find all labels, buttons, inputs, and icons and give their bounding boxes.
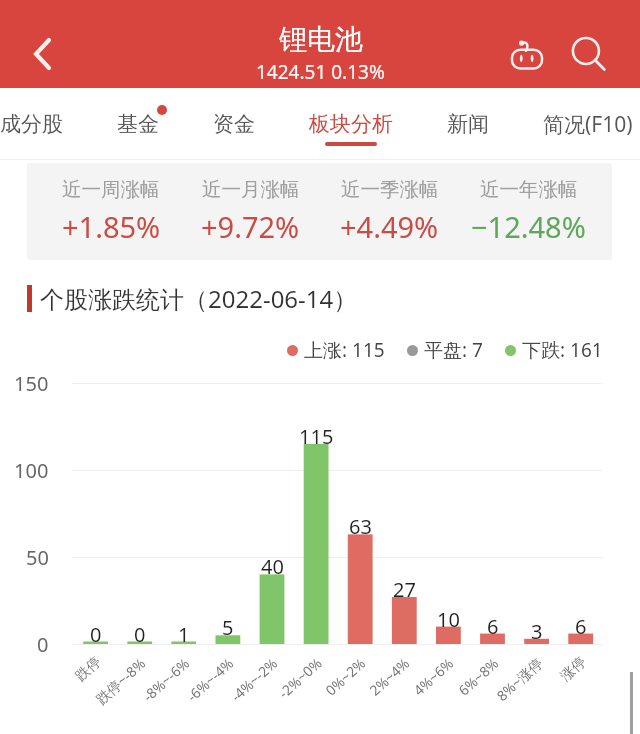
staticText: 板块分析 [309, 111, 393, 137]
button[interactable]: 上涨: 115 [287, 337, 385, 363]
staticText: 0 [134, 621, 146, 643]
staticText: 新闻 [447, 111, 489, 137]
staticText: 1 [178, 621, 190, 643]
button[interactable]: Back [14, 26, 70, 82]
staticText: -6%~-4% [183, 653, 238, 706]
staticText: 4%~6% [409, 653, 458, 699]
staticText: 涨停 [557, 653, 590, 685]
staticText: 跌停~-8% [92, 653, 150, 708]
staticText: -2%~0% [274, 653, 326, 702]
staticText: 63 [349, 513, 372, 535]
staticText: 3 [531, 618, 543, 640]
staticText: 5 [222, 614, 234, 636]
staticText: +9.72% [201, 207, 300, 246]
staticText: 115 [299, 423, 334, 445]
staticText: 100 [14, 457, 49, 483]
staticText: 简况(F10) [543, 110, 633, 139]
button[interactable]: 板块分析 [282, 88, 420, 160]
button[interactable]: 近一周涨幅 [27, 163, 612, 260]
staticText: 40 [261, 553, 284, 575]
button[interactable]: AI assistant [499, 26, 555, 82]
staticText: 平盘: 7 [424, 337, 483, 363]
button[interactable]: 新闻 [420, 88, 516, 160]
staticText: +4.49% [340, 207, 439, 246]
staticText: 6%~8% [454, 653, 503, 699]
staticText: 锂电池 [279, 22, 363, 57]
staticText: 资金 [213, 111, 255, 137]
button[interactable]: Search [562, 26, 618, 82]
staticText: 基金 [117, 111, 159, 137]
staticText: 6 [575, 613, 587, 635]
staticText: −12.48% [471, 207, 586, 246]
staticText: 1424.51 0.13% [256, 59, 385, 85]
button[interactable]: 简况(F10) [516, 88, 640, 160]
staticText: 成分股 [0, 111, 63, 137]
staticText: 0 [37, 631, 49, 657]
staticText: 10 [437, 606, 460, 628]
button[interactable]: 平盘: 7 [407, 337, 483, 363]
staticText: 跌停 [72, 653, 105, 685]
staticText: 上涨: 115 [304, 337, 385, 363]
staticText: 50 [26, 544, 49, 570]
staticText: +1.85% [62, 207, 161, 246]
staticText: 0 [90, 621, 102, 643]
staticText: 8%~涨停 [492, 653, 547, 705]
staticText: -4%~-2% [227, 653, 282, 706]
button[interactable]: 下跌: 161 [505, 337, 603, 363]
staticText: 27 [393, 576, 416, 598]
staticText: 近一季涨幅 [341, 177, 439, 202]
button[interactable]: 资金 [186, 88, 282, 160]
staticText: 下跌: 161 [522, 337, 603, 363]
button[interactable]: 成分股 [0, 88, 90, 160]
button[interactable]: 基金 [90, 88, 186, 160]
staticText: 150 [14, 370, 49, 396]
staticText: 个股涨跌统计（2022-06-14） [40, 282, 358, 315]
staticText: 2%~4% [365, 653, 414, 699]
staticText: 0%~2% [321, 653, 370, 699]
staticText: 近一周涨幅 [62, 177, 160, 202]
staticText: 6 [487, 613, 499, 635]
staticText: 近一年涨幅 [480, 177, 578, 202]
staticText: 近一月涨幅 [202, 177, 300, 202]
staticText: -8%~-6% [139, 653, 194, 706]
